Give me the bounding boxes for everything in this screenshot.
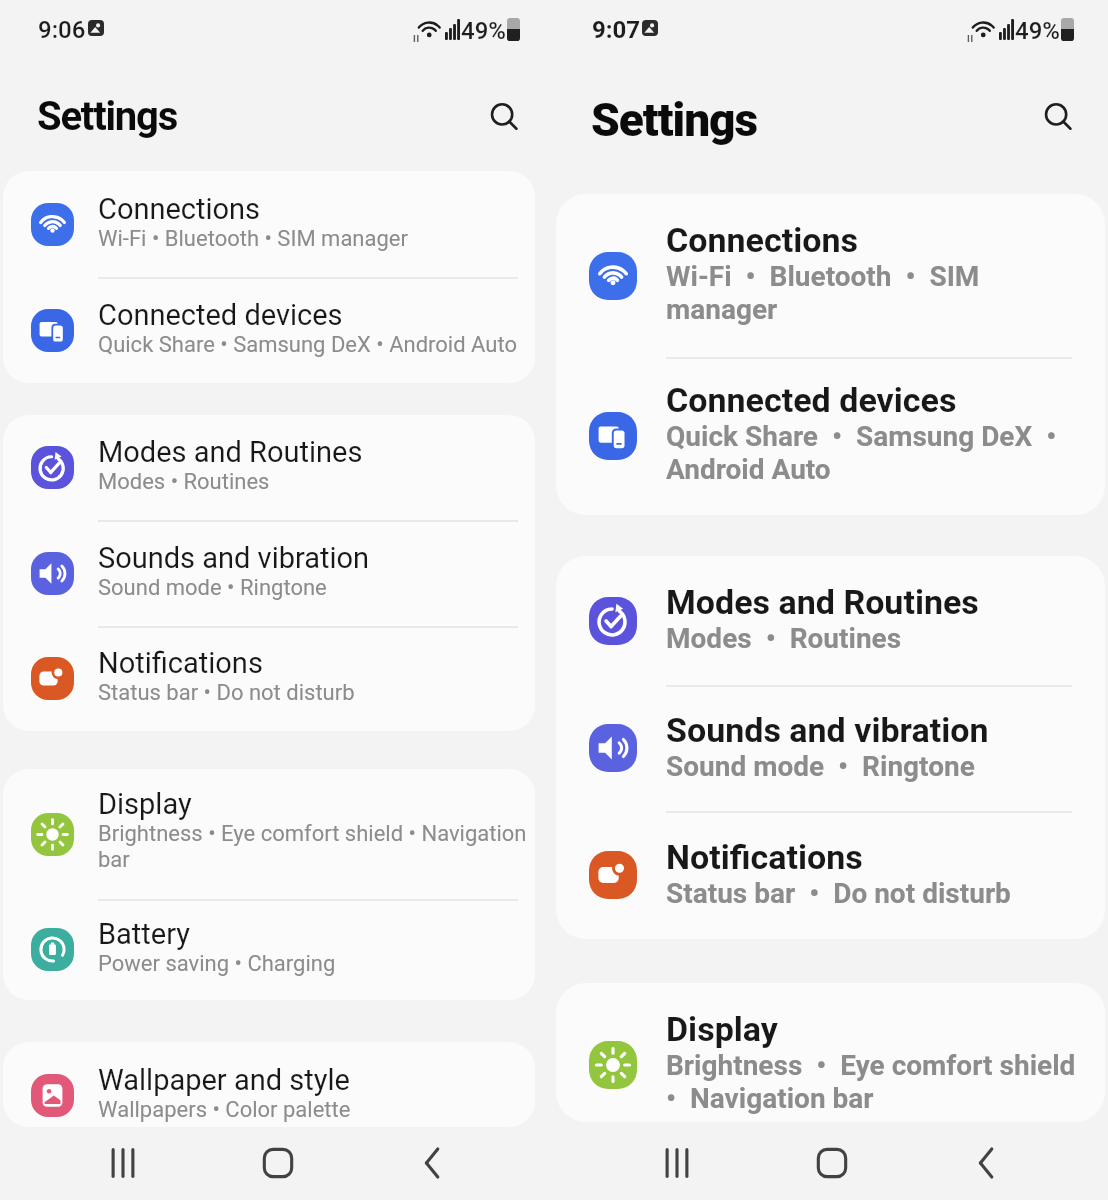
button[interactable]: Connections <box>556 194 1105 357</box>
button[interactable]: Sounds and vibration <box>556 685 1105 811</box>
staticText: Android Auto <box>666 453 831 486</box>
button[interactable]: Battery <box>3 899 535 1000</box>
staticText: • Navigation bar <box>666 1082 874 1115</box>
button[interactable]: Connections <box>3 171 535 277</box>
staticText: Quick Share • Samsung DeX • <box>666 420 1057 453</box>
staticText: Brightness • Eye comfort shield • Naviga… <box>98 821 527 847</box>
staticText: Wi-Fi • Bluetooth • SIM manager <box>98 226 408 252</box>
staticText: Quick Share • Samsung DeX • Android Auto <box>98 332 517 358</box>
button[interactable] <box>104 1145 142 1181</box>
button[interactable]: Modes and Routines <box>3 415 535 520</box>
staticText: Wallpaper and style <box>98 1063 350 1097</box>
staticText: bar <box>98 847 130 873</box>
staticText: 9:07 <box>592 16 641 44</box>
staticText: Display <box>666 1009 778 1049</box>
button[interactable] <box>1041 100 1077 136</box>
button[interactable] <box>813 1145 851 1181</box>
button[interactable]: Connected devices <box>556 357 1105 515</box>
staticText: Connections <box>98 192 261 226</box>
button[interactable]: Notifications <box>3 626 535 731</box>
staticText: Connections <box>666 220 858 260</box>
staticText: Battery <box>98 917 190 951</box>
staticText: Sounds and vibration <box>98 541 370 575</box>
button[interactable] <box>487 100 523 136</box>
staticText: Sounds and vibration <box>666 710 989 750</box>
staticText: Status bar • Do not disturb <box>98 680 355 706</box>
staticText: Sound mode • Ringtone <box>98 575 327 601</box>
staticText: Wi-Fi • Bluetooth • SIM <box>666 260 980 293</box>
staticText: Status bar • Do not disturb <box>666 877 1011 910</box>
staticText: Sound mode • Ringtone <box>666 750 975 783</box>
button[interactable]: Wallpaper and style <box>3 1042 535 1127</box>
staticText: Connected devices <box>666 380 957 420</box>
button[interactable]: Display <box>3 769 535 899</box>
staticText: Modes and Routines <box>98 435 363 469</box>
button[interactable] <box>259 1145 297 1181</box>
button[interactable] <box>658 1145 696 1181</box>
staticText: Wallpapers • Color palette <box>98 1097 351 1123</box>
staticText: Modes • Routines <box>98 469 270 495</box>
staticText: 49% <box>461 17 506 45</box>
staticText: 49% <box>1015 17 1060 45</box>
button[interactable]: Modes and Routines <box>556 556 1105 685</box>
staticText: Settings <box>37 93 178 140</box>
staticText: Notifications <box>98 646 263 680</box>
staticText: Modes • Routines <box>666 622 902 655</box>
staticText: manager <box>666 293 778 326</box>
staticText: Power saving • Charging <box>98 951 336 977</box>
staticText: 9:06 <box>38 16 86 44</box>
staticText: Settings <box>591 93 758 147</box>
staticText: Notifications <box>666 837 863 877</box>
staticText: Connected devices <box>98 298 343 332</box>
button[interactable]: Connected devices <box>3 277 535 383</box>
button[interactable]: Sounds and vibration <box>3 520 535 626</box>
button[interactable]: Display <box>556 983 1105 1122</box>
button[interactable] <box>969 1145 1007 1181</box>
button[interactable] <box>415 1145 453 1181</box>
staticText: Modes and Routines <box>666 582 979 622</box>
staticText: Display <box>98 787 192 821</box>
button[interactable]: Notifications <box>556 811 1105 939</box>
staticText: Brightness • Eye comfort shield <box>666 1049 1076 1082</box>
